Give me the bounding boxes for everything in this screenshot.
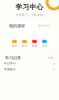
button[interactable]: 资料 — [39, 40, 49, 47]
button[interactable]: 今日学习 — [0, 60, 59, 66]
staticText: 查看全部 — [38, 24, 50, 28]
staticText: > — [53, 67, 55, 72]
staticText: 持续学习，不断进步 — [16, 13, 43, 16]
staticText: 资料 — [41, 44, 47, 47]
staticText: 题库 — [21, 44, 27, 47]
button[interactable]: 本周统计 — [0, 66, 59, 72]
button[interactable]: 题库 — [19, 40, 29, 47]
staticText: 直播 — [31, 44, 37, 47]
button[interactable]: 课程 — [9, 40, 19, 47]
staticText: > — [53, 61, 55, 66]
staticText: 本周统计 — [4, 68, 16, 71]
staticText: 课程 — [11, 44, 17, 47]
button[interactable]: 直播 — [29, 40, 39, 47]
staticText: 学习中心 — [15, 3, 43, 11]
staticText: 学习记录 — [5, 55, 21, 60]
staticText: 更多 — [48, 56, 54, 60]
staticText: 今日学习 — [4, 62, 16, 65]
staticText: 我的课程 — [9, 23, 25, 28]
